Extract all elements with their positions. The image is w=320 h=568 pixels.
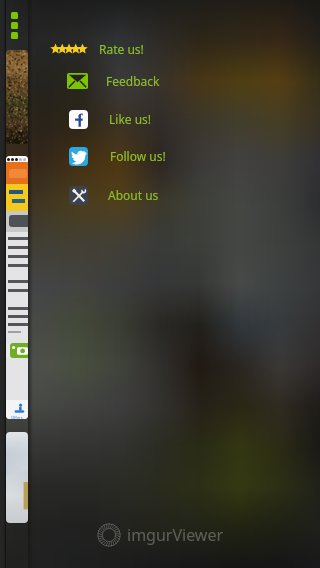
staticText: Offers [11,415,23,419]
button[interactable]: Follow us! [0,143,320,169]
staticText: About us [108,187,159,203]
button[interactable]: More options [2,4,26,46]
staticText: Follow us! [110,148,166,164]
staticText: Like us! [109,111,152,127]
button[interactable]: Rate us! [0,36,320,62]
staticText: Rate us! [99,41,144,57]
button[interactable]: Feedback [0,68,320,94]
button[interactable]: About us [0,182,320,208]
staticText: Feedback [106,73,160,89]
button[interactable]: Like us! [0,106,320,132]
staticText: imgurViewer [127,524,224,546]
